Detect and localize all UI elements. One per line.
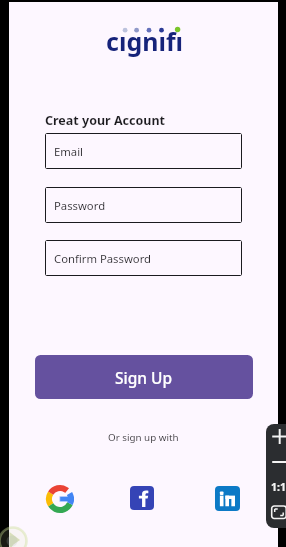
button[interactable]: Password <box>45 187 242 223</box>
button[interactable]: Confirm Password <box>45 240 242 276</box>
button[interactable]: Sign Up <box>35 355 253 399</box>
staticText: Email <box>54 144 84 159</box>
button[interactable]: Sign up with Facebook <box>130 486 154 510</box>
staticText: cıgnıfı <box>106 24 184 58</box>
button[interactable]: Sign up with Google <box>46 485 74 513</box>
button[interactable]: Sign up with LinkedIn <box>215 486 240 511</box>
staticText: Password <box>54 198 106 213</box>
button[interactable]: Email <box>45 133 242 169</box>
staticText: 1:1 <box>271 480 286 494</box>
staticText: Confirm Password <box>54 251 152 266</box>
staticText: Or sign up with <box>108 431 179 444</box>
staticText: Creat your Account <box>45 112 165 129</box>
staticText: Sign Up <box>115 367 173 388</box>
